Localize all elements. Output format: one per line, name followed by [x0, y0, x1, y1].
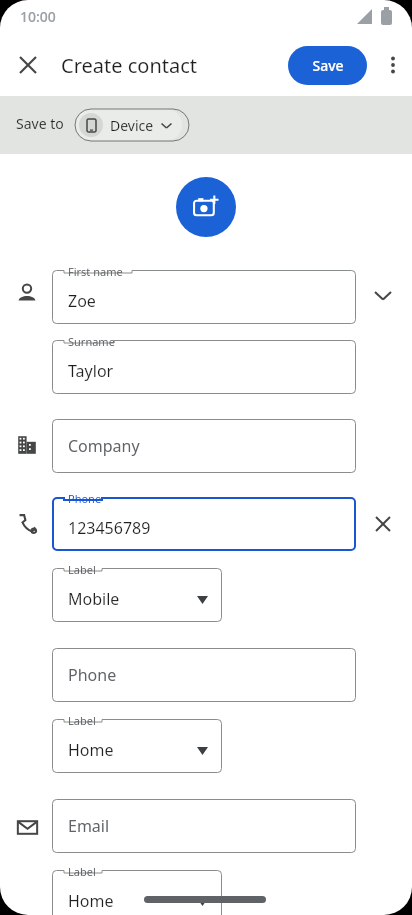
staticText: Phone [68, 664, 117, 686]
button[interactable]: Surname [52, 340, 356, 394]
staticText: Zoe [68, 290, 96, 312]
button[interactable]: Phone [52, 497, 356, 551]
button[interactable]: Email [52, 799, 356, 853]
staticText: Email [68, 815, 110, 837]
staticText: Label [68, 864, 96, 879]
button[interactable]: Expand name fields [365, 278, 401, 314]
staticText: 10:00 [20, 7, 56, 26]
button[interactable]: Device [75, 109, 182, 141]
staticText: Mobile [68, 588, 120, 610]
button[interactable]: Close [8, 45, 48, 85]
button[interactable]: First name [52, 270, 356, 324]
staticText: Save [312, 56, 344, 75]
staticText: Home [68, 739, 114, 761]
staticText: Label [68, 562, 96, 577]
button[interactable]: More options [374, 46, 412, 84]
staticText: Device [110, 116, 154, 135]
button[interactable]: Phone [52, 648, 356, 702]
button[interactable]: Clear phone number [365, 506, 401, 542]
staticText: Home [68, 890, 114, 912]
button[interactable]: Save [288, 46, 367, 85]
staticText: Phone [68, 491, 102, 506]
staticText: Surname [68, 334, 115, 349]
staticText: Label [68, 713, 96, 728]
button[interactable]: Company [52, 419, 356, 473]
staticText: Taylor [68, 360, 114, 382]
staticText: Save to [16, 114, 64, 133]
button[interactable]: Label [52, 568, 222, 622]
button[interactable]: Add photo [176, 177, 236, 237]
button[interactable]: Label [52, 719, 222, 773]
button[interactable]: Label [52, 870, 222, 915]
staticText: First name [68, 264, 123, 279]
staticText: 123456789 [68, 517, 151, 539]
staticText: Create contact [61, 52, 198, 79]
staticText: Company [68, 435, 140, 457]
